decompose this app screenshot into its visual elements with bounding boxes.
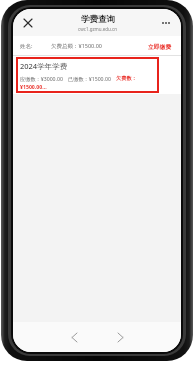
- staticText: 已缴数：¥1500.00: [68, 75, 111, 82]
- button[interactable]: More options: [156, 14, 176, 32]
- staticText: cwc1.gzmu.edu.cn: [78, 26, 117, 32]
- staticText: 应缴数：¥3000.00: [20, 75, 63, 82]
- button[interactable]: Close: [18, 13, 38, 33]
- staticText: 学费查询: [81, 14, 115, 25]
- button[interactable]: 立即缴费: [146, 41, 174, 52]
- staticText: 立即缴费: [148, 43, 172, 50]
- button[interactable]: Back: [61, 324, 87, 350]
- staticText: ¥1500.00...: [20, 83, 47, 90]
- staticText: 2024学年学费: [20, 61, 68, 71]
- staticText: 欠费总额：¥1500.00: [51, 42, 102, 50]
- button[interactable]: 2024学年学费: [16, 57, 159, 93]
- staticText: 姓名:: [20, 42, 33, 50]
- staticText: 欠费数：: [116, 75, 137, 82]
- button[interactable]: Forward: [107, 324, 133, 350]
